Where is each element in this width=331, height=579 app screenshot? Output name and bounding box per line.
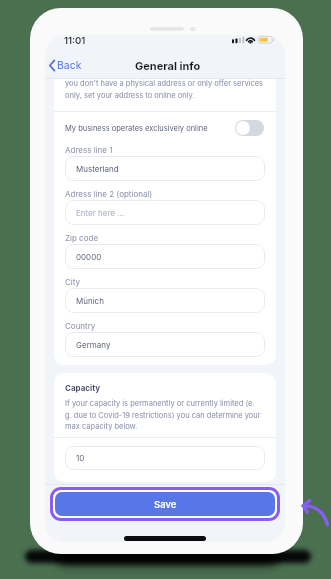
button[interactable]: Musterland xyxy=(65,156,265,181)
staticText: Zip code xyxy=(65,233,99,243)
staticText: Country xyxy=(65,321,96,331)
staticText: City xyxy=(65,277,81,287)
staticText: Save xyxy=(154,499,177,510)
staticText: Adress line 1 xyxy=(65,145,113,155)
staticText: 00000 xyxy=(76,252,102,262)
staticText: Adress line 2 (optional) xyxy=(65,189,153,199)
staticText: 11:01 xyxy=(64,35,86,46)
button[interactable]: Germany xyxy=(65,332,265,357)
staticText: Capacity xyxy=(65,383,101,393)
staticText: Germany xyxy=(76,340,111,350)
button[interactable]: Münich xyxy=(65,288,265,313)
staticText: If your capacity is permanently or curre… xyxy=(65,399,261,431)
staticText: Enter here ... xyxy=(76,208,125,218)
staticText: General info xyxy=(135,59,201,72)
button[interactable]: Enter here ... xyxy=(65,200,265,225)
staticText: Back xyxy=(57,59,82,72)
button[interactable]: 10 xyxy=(65,446,265,470)
staticText: you don't have a physical address or onl… xyxy=(65,79,264,100)
staticText: 10 xyxy=(76,453,85,463)
staticText: My business operates exclusively online xyxy=(65,124,235,133)
button[interactable]: Back xyxy=(45,55,90,76)
staticText: Musterland xyxy=(76,164,119,174)
button[interactable]: 00000 xyxy=(65,244,265,269)
button[interactable]: Save xyxy=(55,492,275,516)
staticText: Münich xyxy=(76,296,104,306)
button[interactable]: My business operates exclusively online xyxy=(54,112,276,144)
